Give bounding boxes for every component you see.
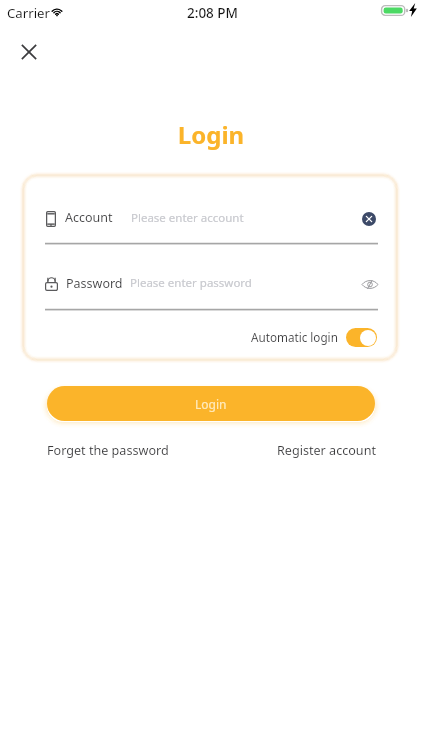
staticText: Register account (277, 442, 376, 459)
staticText: Account (65, 209, 113, 226)
staticText: Carrier (7, 4, 50, 22)
staticText: Login (195, 396, 227, 412)
staticText: Login (0, 118, 422, 151)
staticText: Password (66, 275, 123, 292)
staticText: Please enter password (130, 275, 252, 291)
button[interactable]: Forget the password (47, 440, 169, 461)
button[interactable]: Account (46, 205, 379, 231)
staticText: Forget the password (47, 442, 169, 459)
button[interactable]: Clear account (360, 210, 377, 227)
button[interactable]: Show password (361, 276, 378, 293)
staticText: 2:08 PM (187, 4, 238, 22)
button[interactable]: Register account (277, 440, 376, 461)
staticText: Automatic login (251, 329, 338, 345)
staticText: Please enter account (131, 210, 244, 226)
button[interactable]: Close (10, 33, 48, 71)
button[interactable]: Automatic login (251, 326, 377, 348)
button[interactable]: Login (47, 386, 375, 421)
button[interactable]: Password (45, 270, 379, 296)
